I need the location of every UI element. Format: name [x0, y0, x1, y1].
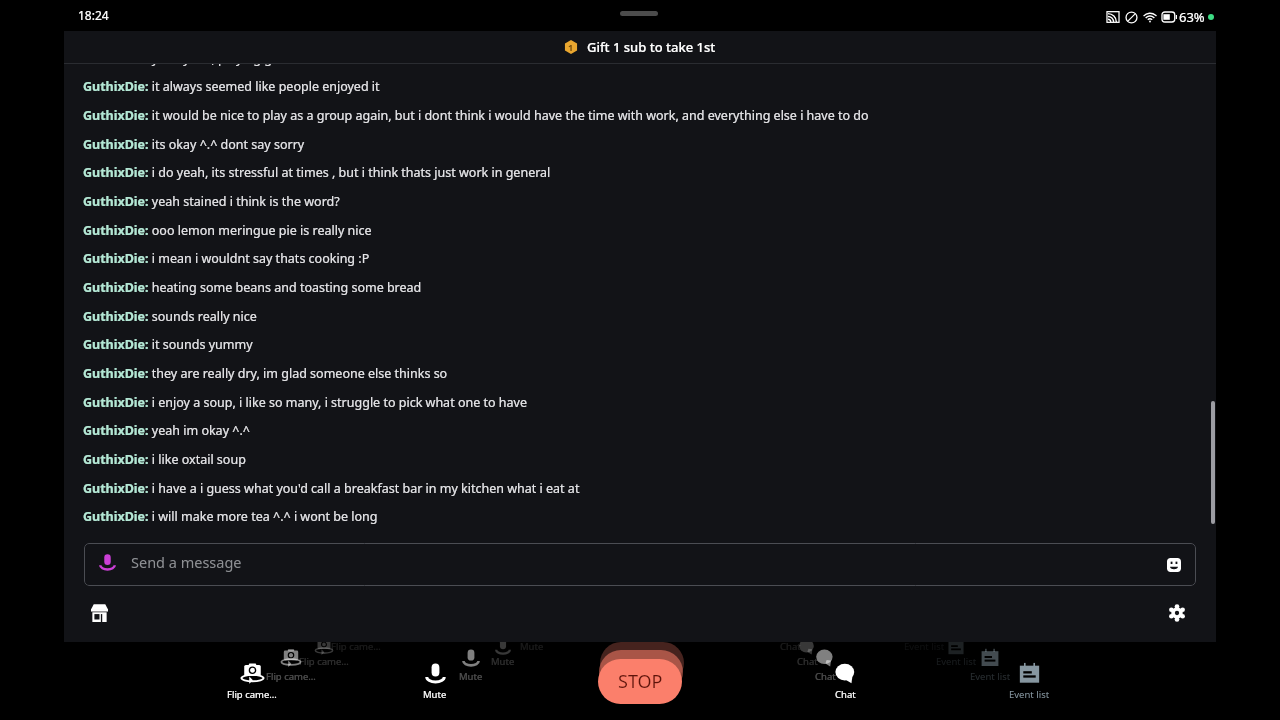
staticText: Flip came…	[299, 655, 349, 668]
staticText: Flip came…	[227, 688, 277, 701]
button[interactable]: GuthixDie: yeah yeah, playing games can …	[64, 47, 1216, 71]
staticText: 63%	[1179, 8, 1205, 26]
button[interactable]: GuthixDie: yeah stained i think is the w…	[64, 190, 1216, 214]
staticText: GuthixDie: it sounds yummy	[83, 336, 253, 353]
staticText: GuthixDie: i like oxtail soup	[83, 451, 246, 468]
staticText: GuthixDie: i do yeah, its stressful at t…	[83, 164, 551, 181]
staticText: Mute	[491, 655, 515, 668]
staticText: Gift 1 sub to take 1st	[587, 38, 716, 56]
staticText: 18:24	[78, 7, 109, 23]
staticText: GuthixDie: yeah im okay ^.^	[83, 422, 250, 439]
staticText: GuthixDie: its okay ^.^ dont say sorry	[83, 136, 305, 153]
button[interactable]: 1	[64, 31, 1216, 63]
button[interactable]: Event list	[984, 662, 1074, 702]
button[interactable]: GuthixDie: i like oxtail soup	[64, 448, 1216, 472]
staticText: Event list	[970, 670, 1011, 683]
button[interactable]: GuthixDie: ooo lemon meringue pie is rea…	[64, 219, 1216, 243]
staticText: Chat	[835, 688, 856, 701]
staticText: Chat	[797, 655, 818, 668]
staticText: GuthixDie: i have a i guess what you'd c…	[83, 480, 580, 497]
button[interactable]: GuthixDie: i do yeah, its stressful at t…	[64, 161, 1216, 185]
staticText: 1	[568, 41, 574, 53]
button[interactable]: Emotes	[1162, 553, 1185, 576]
button[interactable]: Mute	[390, 662, 480, 702]
button[interactable]: GuthixDie: it sounds yummy	[64, 333, 1216, 357]
staticText: Send a message	[131, 552, 242, 572]
button[interactable]: Send a message	[84, 543, 1196, 586]
button[interactable]: Flip came…	[207, 662, 297, 702]
staticText: Flip came…	[331, 640, 381, 653]
staticText: GuthixDie: heating some beans and toasti…	[83, 279, 422, 296]
button[interactable]: GuthixDie: its okay ^.^ dont say sorry	[64, 133, 1216, 157]
button[interactable]: GuthixDie: it always seemed like people …	[64, 75, 1216, 99]
button[interactable]: GuthixDie: they are really dry, im glad …	[64, 362, 1216, 386]
staticText: Flip came…	[266, 670, 316, 683]
staticText: Event list	[1009, 688, 1050, 701]
staticText: STOP	[618, 669, 663, 694]
staticText: GuthixDie: i mean i wouldnt say thats co…	[83, 250, 370, 267]
button[interactable]: Store	[82, 596, 116, 630]
button[interactable]: GuthixDie: sounds really nice	[64, 305, 1216, 329]
button[interactable]: GuthixDie: i mean i wouldnt say thats co…	[64, 247, 1216, 271]
staticText: Mute	[459, 670, 483, 683]
staticText: Mute	[520, 640, 544, 653]
button[interactable]: Settings	[1160, 596, 1194, 630]
staticText: Event list	[936, 655, 977, 668]
staticText: Chat	[815, 670, 836, 683]
staticText: Mute	[423, 688, 447, 701]
staticText: GuthixDie: i enjoy a soup, i like so man…	[83, 394, 527, 411]
button[interactable]: Chat	[800, 662, 890, 702]
staticText: GuthixDie: it would be nice to play as a…	[83, 107, 869, 124]
button[interactable]: GuthixDie: i have a i guess what you'd c…	[64, 477, 1216, 501]
staticText: GuthixDie: yeah yeah, playing games can …	[83, 50, 449, 67]
button[interactable]: GuthixDie: i will make more tea ^.^ i wo…	[64, 505, 1216, 529]
staticText: GuthixDie: it always seemed like people …	[83, 78, 380, 95]
staticText: GuthixDie: sounds really nice	[83, 308, 257, 325]
staticText: GuthixDie: i will make more tea ^.^ i wo…	[83, 508, 378, 525]
staticText: GuthixDie: they are really dry, im glad …	[83, 365, 448, 382]
button[interactable]: GuthixDie: i enjoy a soup, i like so man…	[64, 391, 1216, 415]
staticText: Chat	[780, 640, 801, 653]
button[interactable]: STOP	[598, 659, 682, 704]
staticText: GuthixDie: ooo lemon meringue pie is rea…	[83, 222, 372, 239]
button[interactable]: GuthixDie: yeah im okay ^.^	[64, 419, 1216, 443]
button[interactable]: GuthixDie: it would be nice to play as a…	[64, 104, 1216, 128]
staticText: Event list	[904, 640, 945, 653]
staticText: GuthixDie: yeah stained i think is the w…	[83, 193, 340, 210]
button[interactable]: GuthixDie: heating some beans and toasti…	[64, 276, 1216, 300]
